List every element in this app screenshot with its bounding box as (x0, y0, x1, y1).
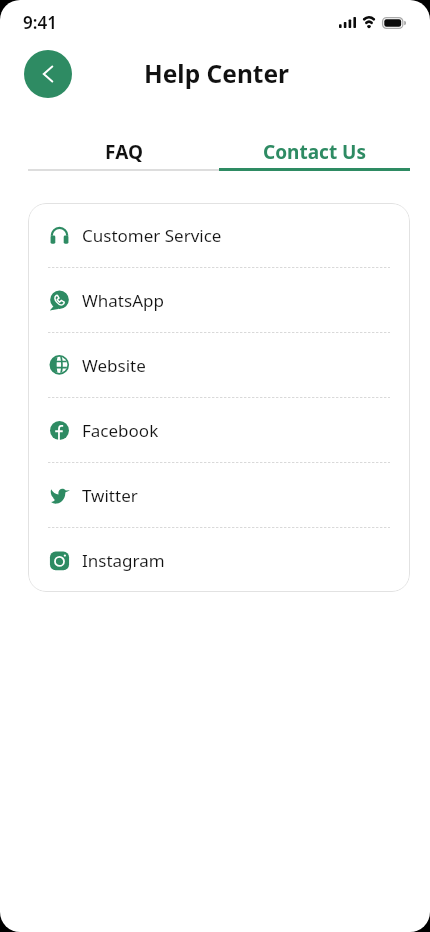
staticText: Customer Service (82, 224, 222, 247)
staticText: Twitter (82, 484, 138, 507)
staticText: Website (82, 354, 146, 377)
button[interactable]: Twitter (28, 463, 410, 527)
staticText: Facebook (82, 419, 159, 442)
button[interactable]: WhatsApp (28, 268, 410, 332)
staticText: 9:41 (23, 11, 57, 34)
staticText: Instagram (82, 549, 165, 572)
staticText: WhatsApp (82, 289, 164, 312)
button[interactable]: Website (28, 333, 410, 397)
staticText: Help Center (144, 57, 290, 90)
button[interactable]: Back (24, 50, 72, 98)
staticText: Contact Us (263, 139, 366, 165)
button[interactable]: Facebook (28, 398, 410, 462)
button[interactable]: Customer Service (28, 203, 410, 267)
staticText: FAQ (105, 139, 143, 165)
button[interactable]: Instagram (28, 528, 410, 592)
button[interactable]: FAQ (28, 131, 219, 171)
button[interactable]: Contact Us (219, 131, 410, 171)
